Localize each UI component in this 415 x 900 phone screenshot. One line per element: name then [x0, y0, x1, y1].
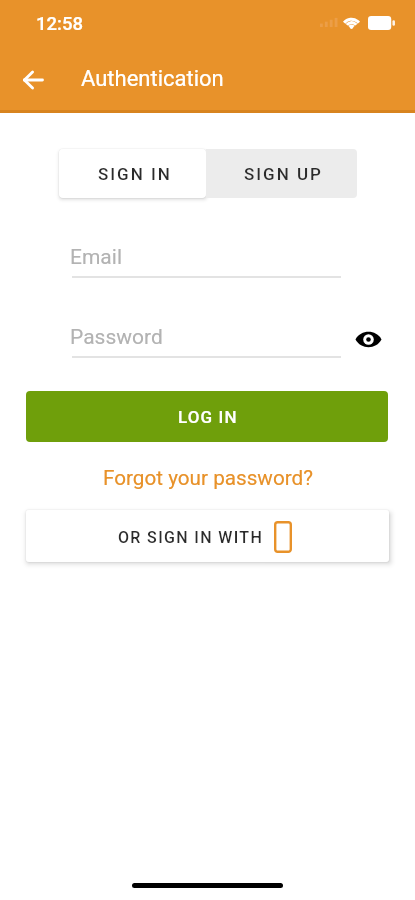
button[interactable]: SIGN IN [59, 149, 206, 198]
staticText: OR SIGN IN WITH [118, 528, 264, 547]
staticText: Email [70, 245, 122, 270]
staticText: 12:58 [36, 13, 83, 35]
button[interactable]: OR SIGN IN WITH [26, 510, 389, 562]
button[interactable]: SIGN UP [206, 149, 357, 198]
staticText: Authentication [81, 66, 224, 92]
button[interactable]: Forgot your password? [93, 462, 323, 494]
button[interactable]: Back [11, 58, 55, 102]
staticText: SIGN UP [244, 164, 323, 184]
button[interactable]: Password [70, 322, 341, 358]
staticText: SIGN IN [98, 164, 172, 184]
staticText: Password [70, 325, 163, 350]
button[interactable]: Email [70, 242, 341, 278]
button[interactable]: Show password [350, 321, 387, 358]
button[interactable]: LOG IN [26, 391, 388, 442]
staticText: LOG IN [178, 407, 238, 427]
